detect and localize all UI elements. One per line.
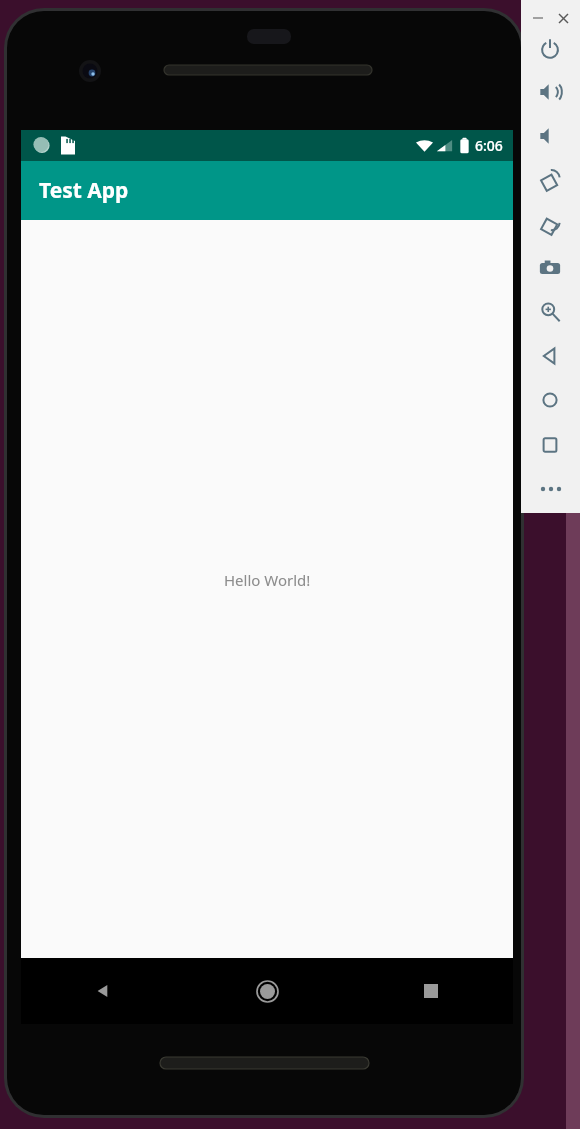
button[interactable]: Minimize <box>526 6 550 30</box>
button[interactable]: Test App <box>21 161 513 220</box>
button[interactable]: Close <box>551 6 575 30</box>
button[interactable]: Zoom <box>535 297 565 327</box>
staticText: Hello World! <box>224 570 311 590</box>
staticText: 6:06 <box>475 136 503 155</box>
button[interactable]: Power <box>535 34 565 64</box>
button[interactable]: Overview <box>535 430 565 460</box>
button[interactable]: Home <box>185 958 349 1024</box>
button[interactable]: Rotate left <box>535 166 565 196</box>
button[interactable]: Back <box>535 341 565 371</box>
button[interactable]: Take screenshot <box>535 253 565 283</box>
button[interactable]: Volume up <box>535 77 565 107</box>
button[interactable]: Rotate right <box>535 210 565 240</box>
button[interactable]: Back <box>21 958 185 1024</box>
button[interactable]: Home <box>535 385 565 415</box>
button[interactable]: Volume down <box>535 121 565 151</box>
button[interactable]: Recent apps <box>349 958 513 1024</box>
button[interactable]: More <box>535 474 565 504</box>
staticText: Test App <box>39 176 129 205</box>
